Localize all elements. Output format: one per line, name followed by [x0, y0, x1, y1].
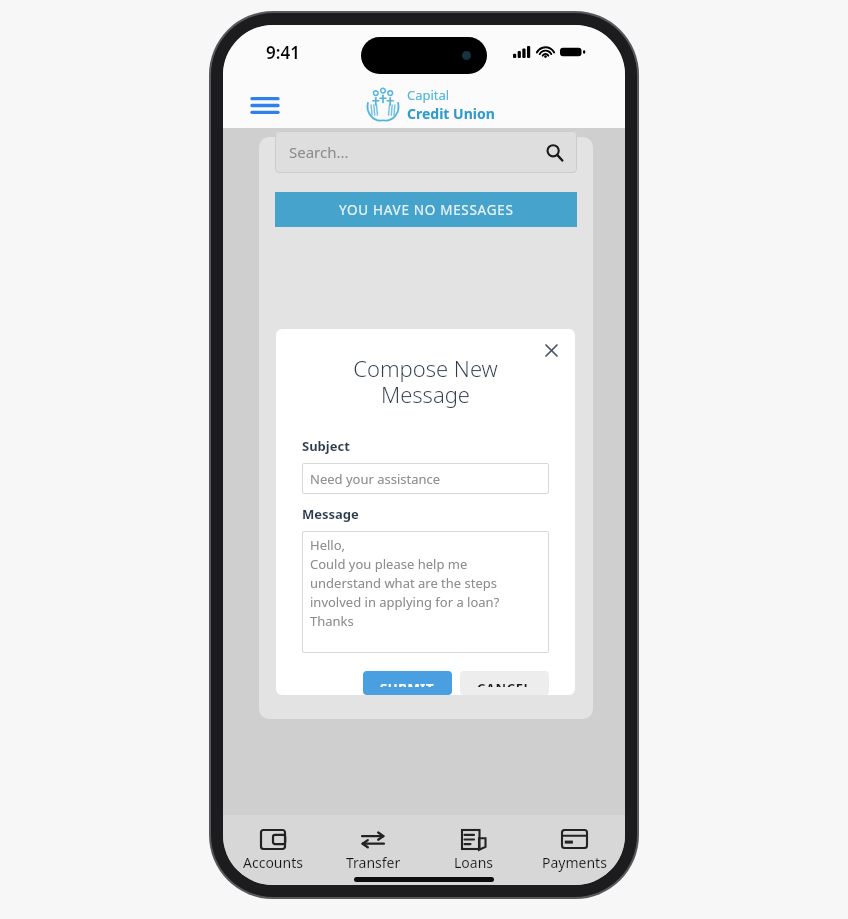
staticText: YOU HAVE NO MESSAGES [339, 201, 514, 219]
staticText: Capital [407, 86, 450, 104]
staticText: Need your assistance [310, 470, 441, 488]
button[interactable]: Search... [275, 131, 577, 173]
staticText: Subject [302, 437, 350, 455]
staticText: Hello, Could you please help me understa… [310, 536, 500, 630]
staticText: Transfer [346, 853, 401, 872]
button[interactable]: Transfer [323, 815, 423, 885]
button[interactable]: Need your assistance [302, 463, 549, 494]
staticText: Payments [542, 853, 607, 872]
button[interactable]: Hello, Could you please help me understa… [302, 531, 549, 653]
staticText: Search... [289, 142, 349, 162]
button[interactable]: CANCEL [460, 671, 549, 695]
button[interactable]: Accounts [223, 815, 323, 885]
staticText: SUBMIT [380, 679, 435, 687]
button[interactable]: Payments [524, 815, 625, 885]
button[interactable]: Close [538, 337, 564, 363]
staticText: Message [302, 505, 359, 523]
staticText: Accounts [243, 853, 303, 872]
staticText: Credit Union [407, 104, 495, 123]
staticText: 9:41 [266, 41, 300, 64]
staticText: CANCEL [477, 679, 532, 687]
button[interactable]: SUBMIT [363, 671, 452, 695]
staticText: Loans [454, 853, 494, 872]
other: Search [543, 141, 565, 163]
staticText: Compose New Message [302, 353, 549, 410]
button[interactable]: Menu [247, 87, 283, 123]
button[interactable]: Loans [423, 815, 524, 885]
button[interactable]: YOU HAVE NO MESSAGES [275, 192, 577, 227]
